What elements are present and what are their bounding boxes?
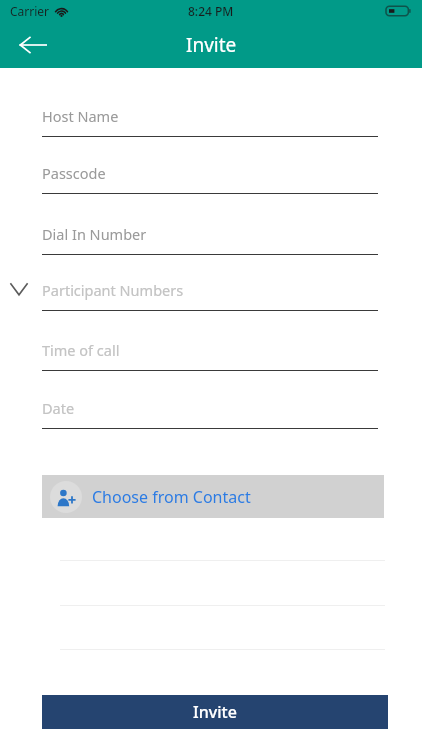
staticText: Dial In Number [42,224,147,244]
staticText: Passcode [42,163,106,183]
staticText: Carrier [10,3,50,19]
staticText: Host Name [42,106,119,126]
button[interactable]: Participant Numbers [0,280,422,311]
other: Expand participant numbers [9,281,29,296]
button[interactable]: Passcode [0,163,422,194]
button[interactable]: Host Name [0,106,422,137]
button[interactable]: Dial In Number [0,224,422,255]
staticText: Choose from Contact [92,486,251,508]
staticText: Time of call [42,340,120,360]
staticText: Date [42,398,75,418]
staticText: Participant Numbers [42,280,184,300]
staticText: 8:24 PM [188,3,234,19]
button[interactable]: Invite [42,695,388,729]
button[interactable]: Choose from Contact [42,475,384,518]
staticText: Invite [193,701,237,723]
button[interactable]: Date [0,398,422,429]
button[interactable]: Back [10,22,56,68]
staticText: Invite [186,32,237,58]
button[interactable]: Time of call [0,340,422,371]
